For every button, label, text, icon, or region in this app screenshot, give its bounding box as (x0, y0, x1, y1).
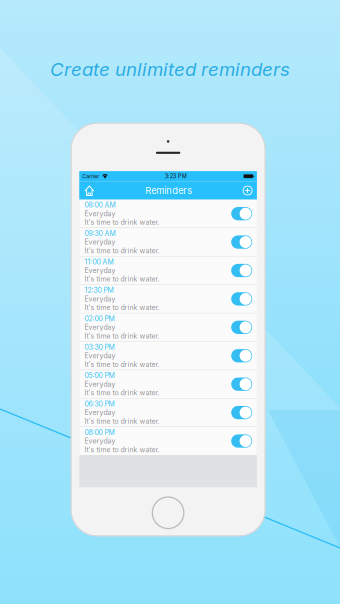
staticText: Everyday (84, 209, 115, 218)
staticText: It's time to drink water. (84, 389, 159, 397)
staticText: It's time to drink water. (84, 417, 159, 425)
staticText: Everyday (84, 408, 115, 417)
staticText: 08:00 AM (84, 201, 115, 209)
button[interactable]: 08:00 AM (79, 200, 257, 228)
button[interactable]: 11:00 AM (79, 256, 257, 284)
staticText: It's time to drink water. (84, 275, 159, 283)
button[interactable]: 05:00 PM (79, 370, 257, 398)
staticText: Everyday (84, 380, 115, 388)
staticText: It's time to drink water. (84, 445, 159, 454)
staticText: 02:00 PM (84, 314, 114, 323)
button[interactable]: Home (79, 181, 99, 200)
staticText: Carrier (82, 173, 99, 179)
staticText: Everyday (84, 266, 115, 275)
staticText: 3:23 PM (165, 173, 187, 180)
staticText: 08:00 PM (84, 428, 114, 437)
button[interactable]: 08:00 PM (79, 427, 257, 455)
button[interactable]: Add reminder (238, 181, 257, 200)
staticText: It's time to drink water. (84, 360, 159, 369)
button[interactable]: 03:30 PM (79, 342, 257, 370)
button[interactable]: 09:30 AM (79, 228, 257, 256)
staticText: Everyday (84, 437, 115, 445)
staticText: 03:30 PM (84, 343, 114, 351)
staticText: It's time to drink water. (84, 332, 159, 340)
staticText: It's time to drink water. (84, 246, 159, 255)
button[interactable]: 06:30 PM (79, 399, 257, 427)
staticText: Create unlimited reminders (50, 58, 290, 81)
staticText: 09:30 AM (84, 229, 115, 238)
staticText: 06:30 PM (84, 400, 114, 408)
button[interactable]: 02:00 PM (79, 313, 257, 341)
staticText: 12:30 PM (84, 286, 113, 294)
staticText: It's time to drink water. (84, 218, 159, 226)
staticText: Everyday (84, 323, 115, 331)
staticText: Everyday (84, 238, 115, 246)
staticText: Everyday (84, 295, 115, 303)
staticText: It's time to drink water. (84, 303, 159, 312)
button[interactable]: 12:30 PM (79, 285, 257, 313)
staticText: Reminders (145, 185, 192, 196)
staticText: Everyday (84, 352, 115, 360)
staticText: 11:00 AM (84, 258, 113, 266)
staticText: 05:00 PM (84, 371, 114, 380)
